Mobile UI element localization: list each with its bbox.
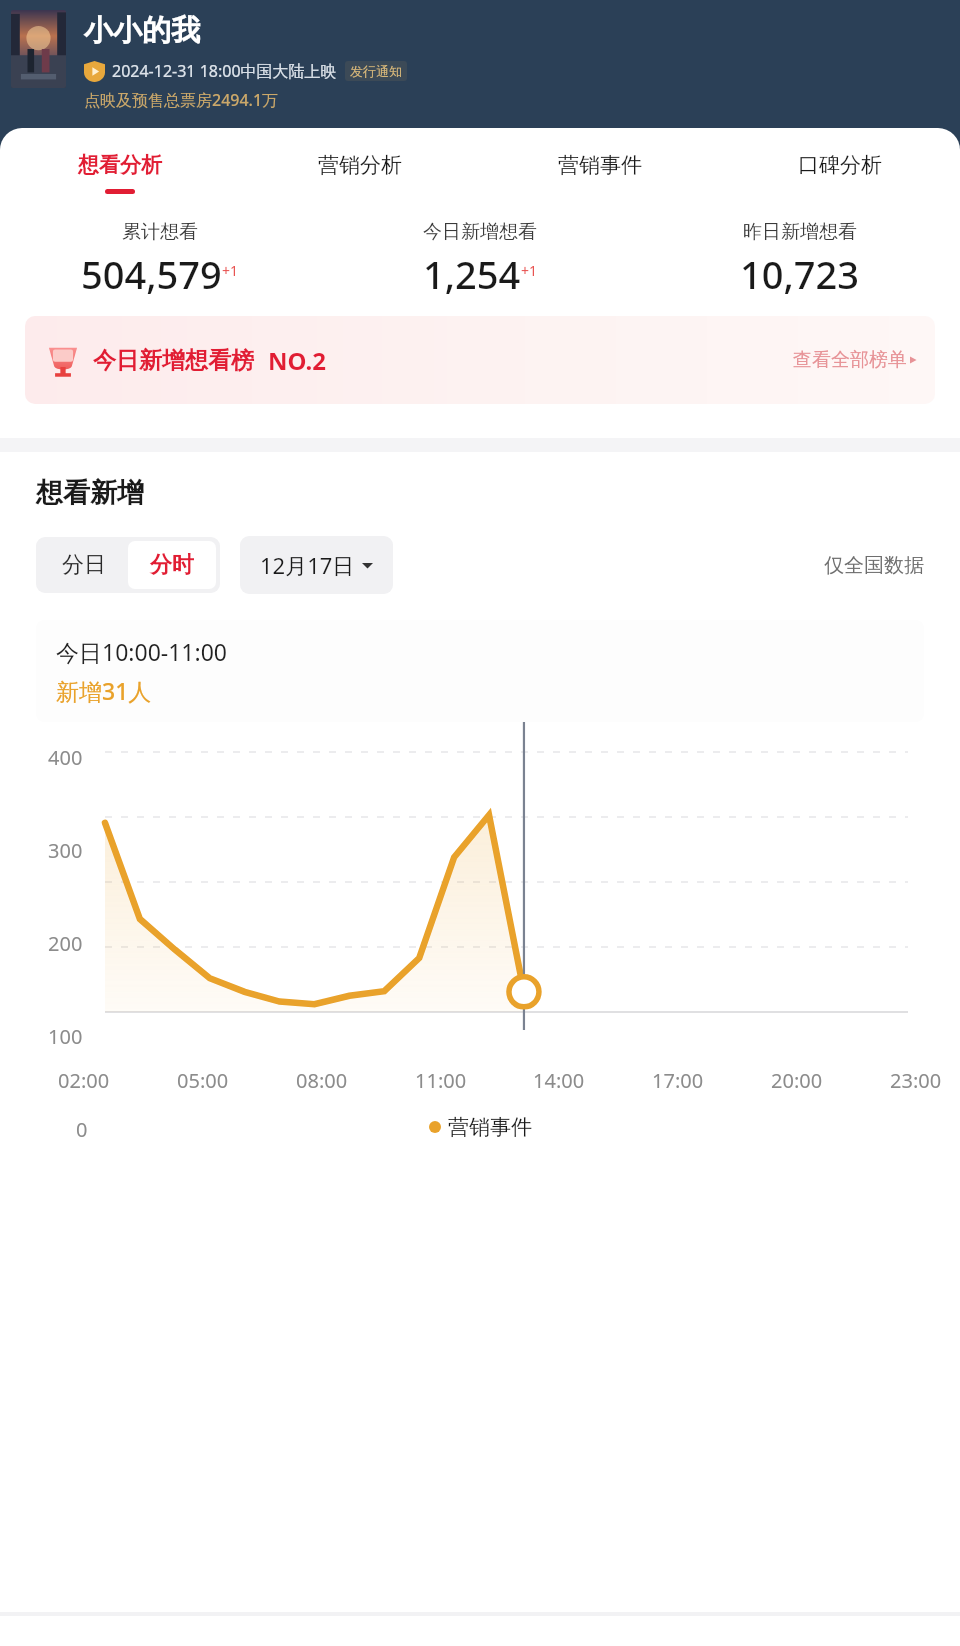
staticText: 昨日新增想看 [743, 220, 857, 244]
staticText: 12月17日 [260, 550, 355, 580]
staticText: 发行通知 [350, 63, 402, 79]
staticText: 504,579 [81, 248, 222, 300]
staticText: 今日10:00-11:00 [56, 636, 227, 667]
staticText: 营销事件 [448, 1114, 532, 1140]
staticText: +1 [222, 261, 239, 280]
button[interactable]: 想看分析 [0, 128, 240, 208]
staticText: 200 [48, 930, 83, 957]
staticText: 想看分析 [78, 152, 162, 178]
staticText: 17:00 [652, 1067, 704, 1094]
staticText: +1 [521, 261, 538, 280]
button[interactable]: 分日 [40, 541, 128, 589]
staticText: 今日新增想看榜 [93, 346, 254, 375]
button[interactable]: 今日新增想看 [320, 220, 640, 300]
staticText: 想看新增 [36, 476, 144, 510]
staticText: 10,723 [740, 248, 860, 300]
staticText: 08:00 [296, 1067, 348, 1094]
staticText: 23:00 [890, 1067, 942, 1094]
button[interactable]: 12月17日 [240, 536, 393, 594]
staticText: 300 [48, 837, 83, 864]
staticText: 11:00 [415, 1067, 467, 1094]
staticText: 05:00 [177, 1067, 229, 1094]
staticText: 100 [48, 1023, 83, 1050]
staticText: 营销分析 [318, 152, 402, 178]
staticText: 查看全部榜单 [793, 348, 907, 372]
staticText: 小小的我 [84, 12, 200, 49]
staticText: NO.2 [268, 344, 327, 377]
button[interactable]: 营销事件 [480, 128, 720, 208]
button[interactable]: 累计想看 [0, 220, 320, 300]
staticText: 营销事件 [558, 152, 642, 178]
staticText: 0 [76, 1116, 88, 1143]
staticText: 口碑分析 [798, 152, 882, 178]
staticText: 400 [48, 744, 83, 771]
staticText: 2024-12-31 18:00中国大陆上映 [112, 60, 337, 82]
staticText: 分时 [150, 551, 194, 579]
button[interactable]: 昨日新增想看 [640, 220, 960, 300]
staticText: 20:00 [771, 1067, 823, 1094]
button[interactable]: 口碑分析 [720, 128, 960, 208]
button[interactable]: 分时 [128, 541, 216, 589]
staticText: 02:00 [58, 1067, 110, 1094]
button[interactable]: 营销分析 [240, 128, 480, 208]
staticText: 今日新增想看 [423, 220, 537, 244]
staticText: 点映及预售总票房2494.1万 [84, 89, 279, 111]
button[interactable]: 今日新增想看榜 [25, 316, 935, 404]
staticText: 1,254 [423, 248, 521, 300]
staticText: 仅全国数据 [824, 553, 924, 578]
staticText: 累计想看 [122, 220, 198, 244]
staticText: 分日 [62, 551, 106, 579]
staticText: 14:00 [533, 1067, 585, 1094]
staticText: 新增31人 [56, 675, 152, 706]
